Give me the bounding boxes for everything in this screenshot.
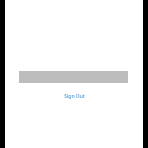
button[interactable]: Sign Out <box>64 93 85 100</box>
staticText: Sign Out <box>64 93 85 100</box>
